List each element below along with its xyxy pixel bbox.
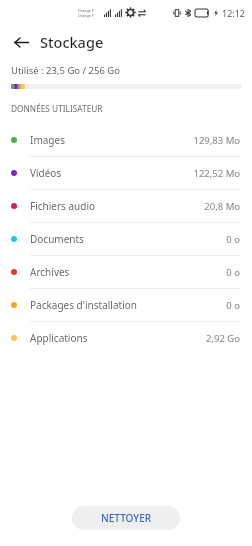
- staticText: 2,92 Go: [206, 332, 240, 345]
- staticText: Orange F: [78, 13, 94, 18]
- staticText: 0 o: [226, 233, 240, 246]
- staticText: Documents: [30, 232, 84, 246]
- button[interactable]: Back: [8, 29, 34, 55]
- staticText: 129,83 Mo: [193, 134, 240, 147]
- button[interactable]: Applications: [0, 322, 252, 354]
- staticText: 122,52 Mo: [193, 167, 240, 180]
- staticText: Vidéos: [30, 166, 62, 180]
- staticText: Utilisé : 23,5 Go / 256 Go: [11, 64, 121, 77]
- staticText: Packages d'installation: [30, 298, 137, 312]
- staticText: 0 o: [226, 266, 240, 279]
- button[interactable]: Fichiers audio: [0, 190, 252, 222]
- button[interactable]: Packages d'installation: [0, 289, 252, 321]
- staticText: Archives: [30, 265, 70, 279]
- staticText: Stockage: [40, 32, 104, 52]
- button[interactable]: Images: [0, 124, 252, 156]
- button[interactable]: NETTOYER: [72, 506, 180, 530]
- button[interactable]: Documents: [0, 223, 252, 255]
- staticText: DONNÉES UTILISATEUR: [11, 103, 103, 114]
- button[interactable]: Vidéos: [0, 157, 252, 189]
- staticText: Fichiers audio: [30, 199, 96, 213]
- button[interactable]: Archives: [0, 256, 252, 288]
- staticText: Images: [30, 133, 65, 147]
- staticText: NETTOYER: [101, 511, 152, 525]
- staticText: 0 o: [226, 299, 240, 312]
- staticText: 12:12: [222, 7, 246, 19]
- staticText: Orange F: [78, 8, 94, 13]
- staticText: 20,8 Mo: [204, 200, 240, 213]
- staticText: Applications: [30, 331, 88, 345]
